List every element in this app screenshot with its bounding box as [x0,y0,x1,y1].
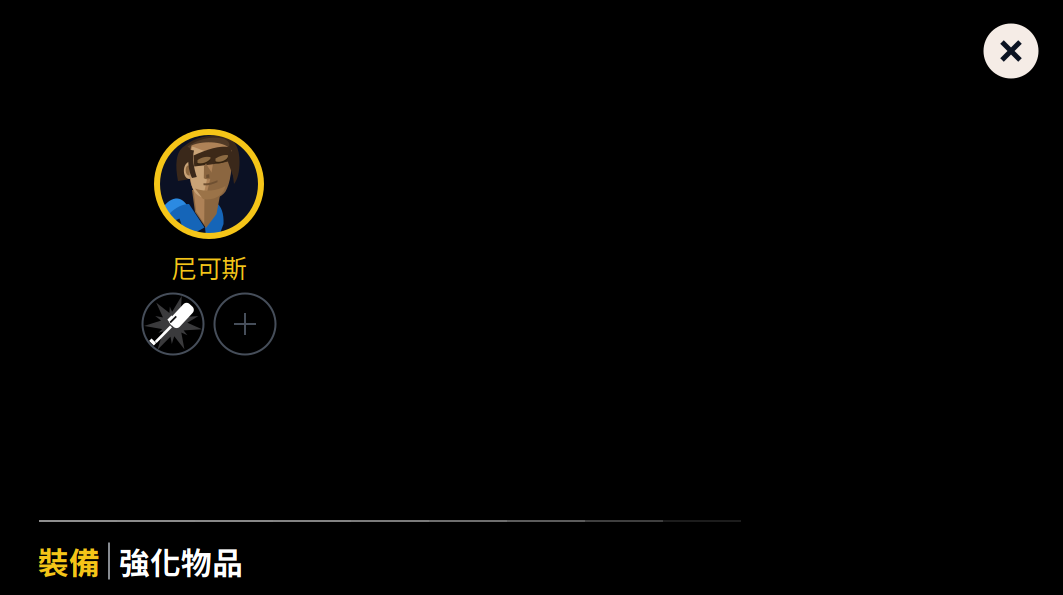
staticText: 裝備 [38,539,100,583]
button[interactable]: Add item [213,292,276,355]
button[interactable]: Close [983,23,1038,78]
button[interactable]: 裝備 [38,538,100,584]
staticText: 尼可斯 [171,249,246,285]
staticText: 強化物品 [119,539,243,583]
button[interactable]: Equipped tool [141,292,204,355]
button[interactable]: Character portrait [154,129,264,239]
button[interactable]: 強化物品 [121,538,241,584]
